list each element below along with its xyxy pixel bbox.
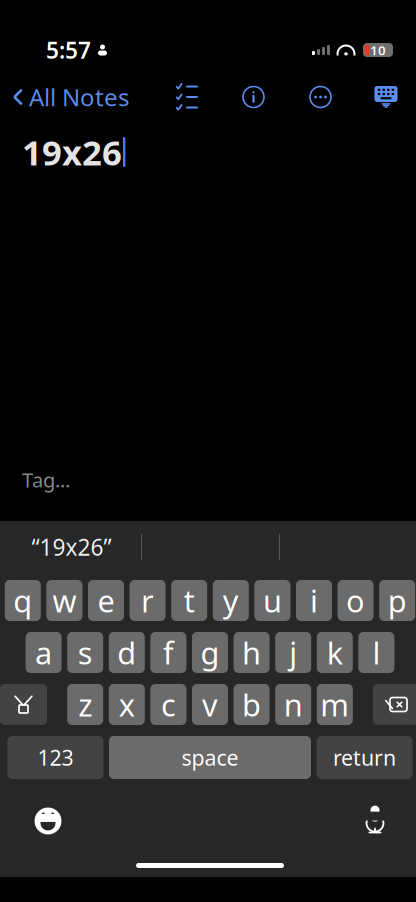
staticText: All Notes <box>29 81 129 113</box>
staticText: d <box>117 632 136 673</box>
staticText: space <box>181 743 238 772</box>
button[interactable]: g <box>192 632 228 673</box>
staticText: h <box>242 632 261 673</box>
button[interactable]: r <box>130 580 166 621</box>
staticText: k <box>327 632 343 673</box>
button[interactable]: i <box>296 580 332 621</box>
button[interactable]: return <box>317 736 413 779</box>
staticText: p <box>388 580 407 621</box>
button[interactable]: Emoji <box>24 797 72 845</box>
staticText: c <box>161 684 176 725</box>
staticText: n <box>284 684 303 725</box>
staticText: b <box>242 684 261 725</box>
button[interactable]: a <box>26 632 62 673</box>
button[interactable]: d <box>109 632 145 673</box>
button[interactable]: Checklist <box>168 80 206 114</box>
button[interactable]: b <box>234 684 270 725</box>
staticText: 10 <box>370 41 386 59</box>
button[interactable]: Shift <box>0 684 47 725</box>
staticText: t <box>184 580 195 621</box>
button[interactable]: y <box>213 580 249 621</box>
staticText: z <box>78 684 92 725</box>
button[interactable]: More <box>301 77 340 116</box>
button[interactable]: u <box>254 580 290 621</box>
button[interactable]: f <box>150 632 186 673</box>
button[interactable]: o <box>338 580 374 621</box>
button[interactable]: “19x26” <box>2 525 141 569</box>
button[interactable]: v <box>192 684 228 725</box>
staticText: f <box>163 632 174 673</box>
button[interactable]: Tag... <box>0 466 416 493</box>
button[interactable]: e <box>88 580 124 621</box>
staticText: 123 <box>37 743 73 772</box>
staticText: w <box>52 580 76 621</box>
staticText: l <box>372 632 380 673</box>
staticText: r <box>141 580 154 621</box>
button[interactable]: Info <box>234 77 273 116</box>
button[interactable]: Delete <box>373 684 416 725</box>
staticText: Tag... <box>22 466 70 493</box>
staticText: x <box>119 684 135 725</box>
button[interactable]: Hide Keyboard <box>366 78 406 116</box>
button[interactable]: c <box>150 684 186 725</box>
staticText: v <box>202 684 218 725</box>
button[interactable]: q <box>5 580 41 621</box>
button[interactable]: m <box>317 684 353 725</box>
button[interactable]: l <box>358 632 394 673</box>
staticText: i <box>310 580 318 621</box>
staticText: 5:57 <box>46 35 91 65</box>
button[interactable]: All Notes <box>0 73 129 121</box>
staticText: a <box>35 632 52 673</box>
staticText: g <box>200 632 219 673</box>
staticText: o <box>346 580 365 621</box>
button[interactable]: t <box>171 580 207 621</box>
staticText: “19x26” <box>31 532 111 562</box>
staticText: s <box>78 632 93 673</box>
staticText: j <box>289 632 297 673</box>
button[interactable]: s <box>67 632 103 673</box>
button[interactable]: 123 <box>7 736 103 779</box>
staticText: y <box>223 580 239 621</box>
button[interactable]: space <box>109 736 311 779</box>
button[interactable]: n <box>275 684 311 725</box>
staticText: e <box>97 580 114 621</box>
staticText: return <box>333 743 396 772</box>
staticText: 19x26 <box>22 129 122 175</box>
button[interactable]: j <box>275 632 311 673</box>
staticText: m <box>320 684 349 725</box>
staticText: q <box>13 580 32 621</box>
button[interactable]: k <box>317 632 353 673</box>
button[interactable]: w <box>46 580 82 621</box>
button[interactable]: x <box>109 684 145 725</box>
button[interactable]: h <box>234 632 270 673</box>
button[interactable]: Dictation <box>354 796 396 846</box>
button[interactable]: z <box>67 684 103 725</box>
staticText: u <box>263 580 282 621</box>
button[interactable]: p <box>379 580 415 621</box>
